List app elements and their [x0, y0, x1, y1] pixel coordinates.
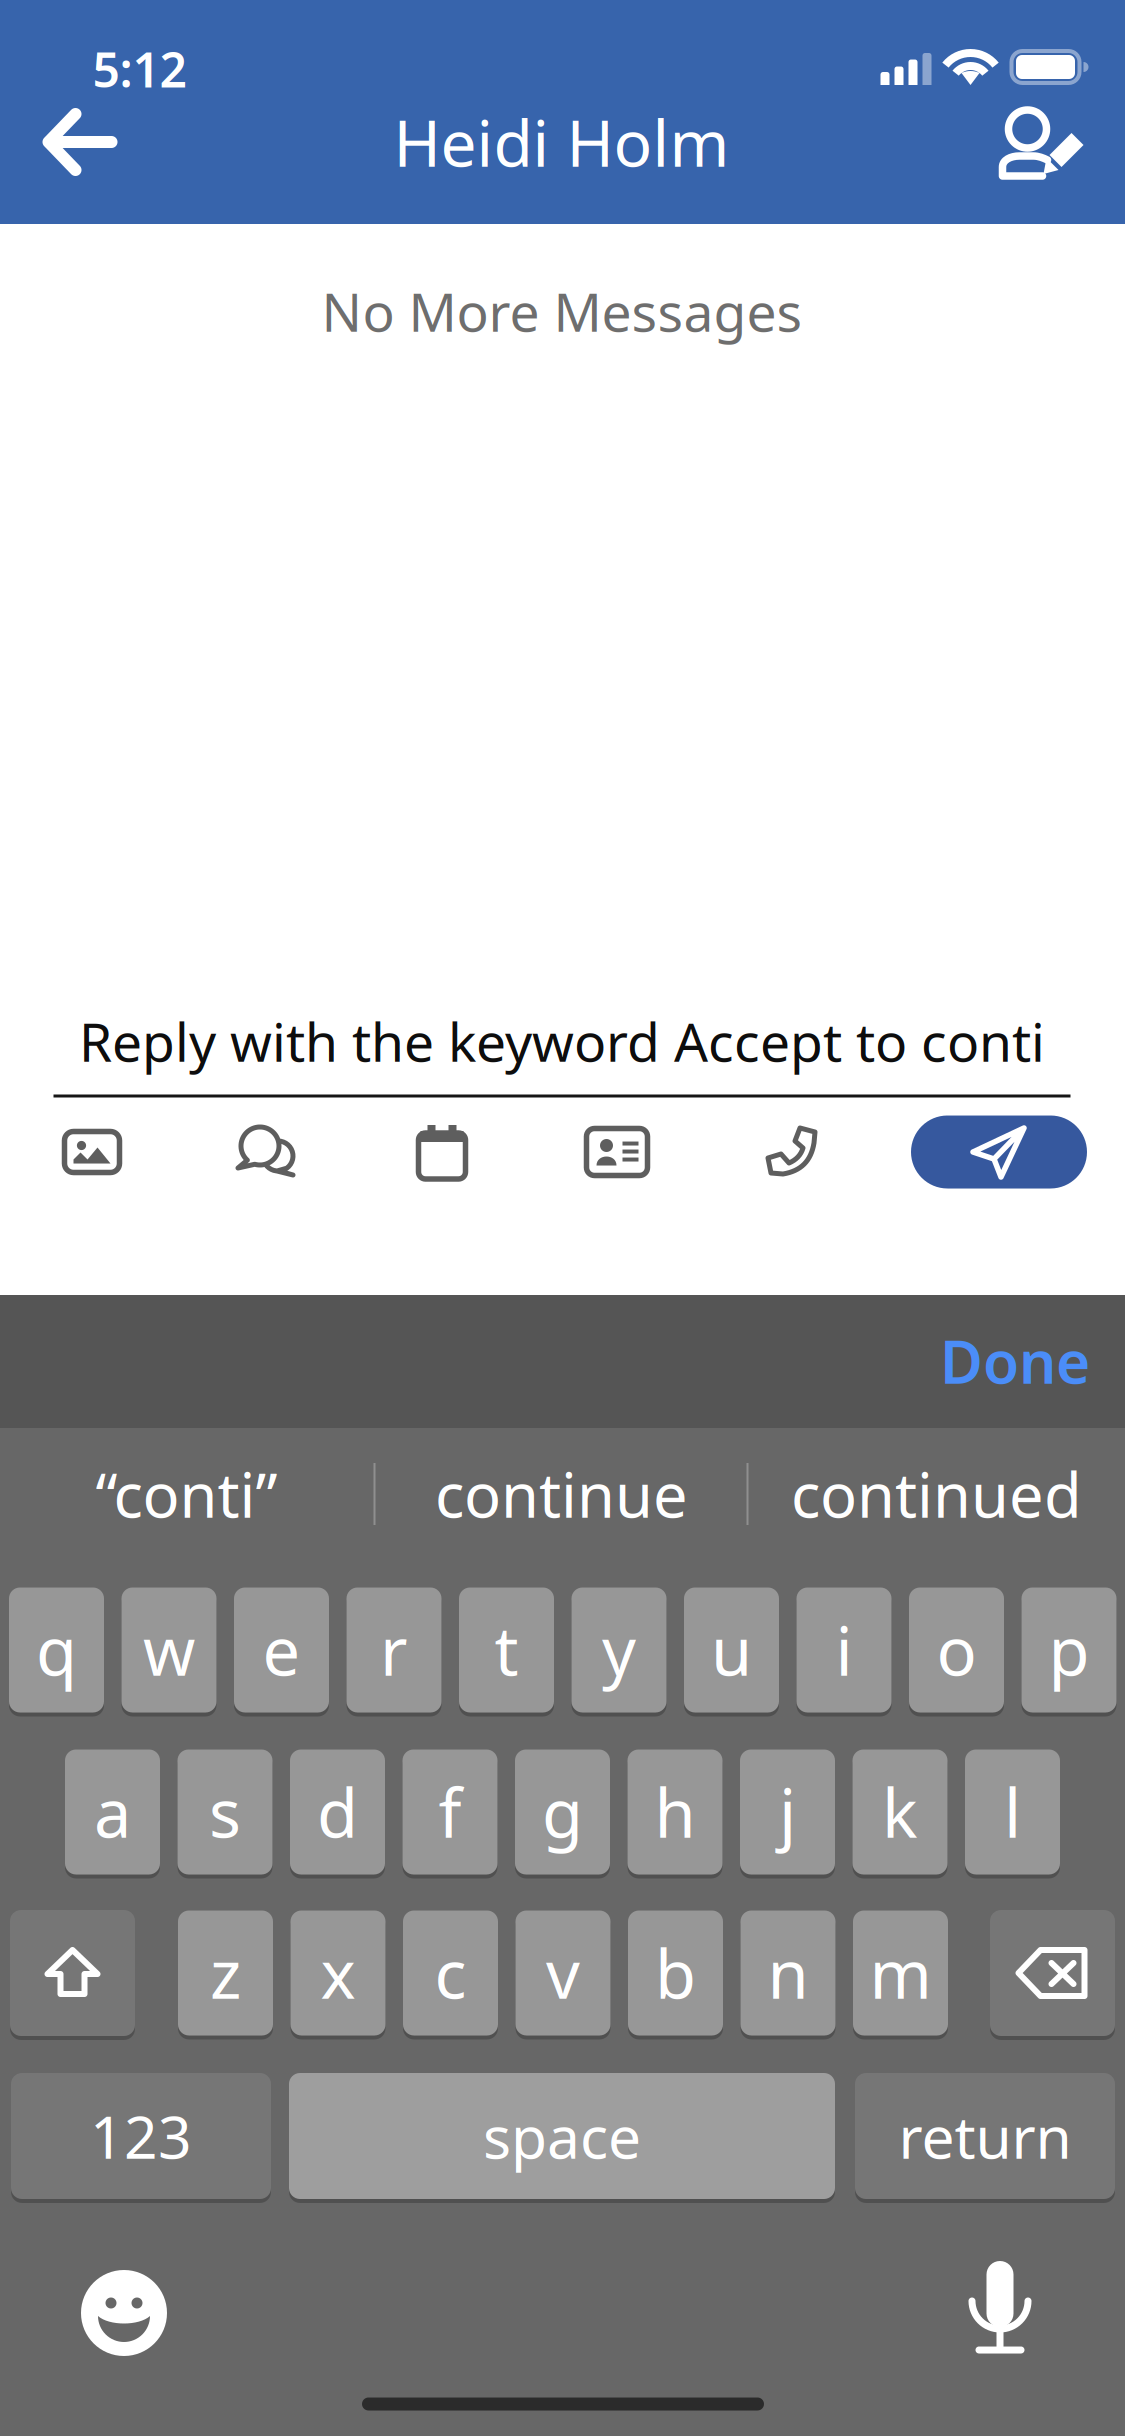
staticText: continued: [791, 1453, 1082, 1535]
button[interactable]: s: [177, 1747, 272, 1876]
button[interactable]: l: [965, 1747, 1060, 1876]
staticText: c: [434, 1929, 466, 2017]
staticText: z: [210, 1929, 241, 2017]
button[interactable]: Emoji: [64, 2253, 184, 2373]
staticText: s: [209, 1768, 241, 1856]
staticText: x: [320, 1929, 355, 2017]
button[interactable]: 123: [11, 2071, 271, 2201]
staticText: l: [1004, 1768, 1021, 1856]
staticText: j: [779, 1768, 796, 1856]
staticText: f: [438, 1768, 461, 1856]
button[interactable]: Call: [732, 1097, 852, 1207]
button[interactable]: a: [65, 1747, 160, 1876]
staticText: u: [711, 1606, 752, 1694]
staticText: q: [36, 1606, 77, 1694]
button[interactable]: r: [346, 1585, 441, 1714]
staticText: w: [143, 1606, 195, 1694]
staticText: e: [262, 1606, 300, 1694]
staticText: Heidi Holm: [393, 99, 729, 184]
staticText: g: [542, 1768, 583, 1856]
button[interactable]: q: [9, 1585, 104, 1714]
staticText: return: [898, 2097, 1071, 2175]
button[interactable]: Quick replies: [207, 1097, 327, 1207]
button[interactable]: k: [852, 1747, 947, 1876]
button[interactable]: n: [740, 1908, 835, 2037]
staticText: space: [483, 2097, 641, 2175]
button[interactable]: Calendar: [382, 1097, 502, 1207]
staticText: h: [654, 1768, 695, 1856]
button[interactable]: Send: [911, 1115, 1087, 1188]
staticText: i: [835, 1606, 852, 1694]
button[interactable]: m: [853, 1908, 948, 2037]
button[interactable]: continue: [376, 1428, 746, 1560]
button[interactable]: w: [121, 1585, 216, 1714]
button[interactable]: b: [628, 1908, 723, 2037]
button[interactable]: Delete: [990, 1908, 1115, 2038]
button[interactable]: f: [402, 1747, 497, 1876]
button[interactable]: Contact card: [557, 1097, 677, 1207]
button[interactable]: New message: [972, 88, 1112, 200]
button[interactable]: g: [515, 1747, 610, 1876]
staticText: “conti”: [95, 1453, 277, 1535]
staticText: t: [494, 1606, 518, 1694]
staticText: Done: [940, 1322, 1090, 1400]
button[interactable]: u: [684, 1585, 779, 1714]
button[interactable]: c: [403, 1908, 498, 2037]
button[interactable]: o: [909, 1585, 1004, 1714]
staticText: o: [936, 1606, 976, 1694]
staticText: r: [380, 1606, 408, 1694]
staticText: b: [655, 1929, 696, 2017]
button[interactable]: x: [290, 1908, 385, 2037]
button[interactable]: space: [289, 2071, 835, 2201]
staticText: Reply with the keyword Accept to conti: [79, 1006, 1045, 1076]
staticText: No More Messages: [321, 276, 802, 346]
staticText: p: [1048, 1606, 1089, 1694]
button[interactable]: j: [740, 1747, 835, 1876]
staticText: 123: [90, 2097, 192, 2175]
button[interactable]: Done: [925, 1311, 1105, 1411]
button[interactable]: v: [515, 1908, 610, 2037]
button[interactable]: h: [627, 1747, 722, 1876]
staticText: d: [317, 1768, 358, 1856]
button[interactable]: Back: [13, 81, 145, 203]
button[interactable]: Dictate: [940, 2252, 1060, 2372]
button[interactable]: e: [234, 1585, 329, 1714]
button[interactable]: Shift: [10, 1908, 135, 2038]
button[interactable]: z: [178, 1908, 273, 2037]
staticText: y: [602, 1606, 636, 1694]
staticText: k: [882, 1768, 918, 1856]
button[interactable]: y: [571, 1585, 666, 1714]
button[interactable]: Photo: [32, 1097, 152, 1207]
button[interactable]: “conti”: [1, 1428, 371, 1560]
button[interactable]: p: [1021, 1585, 1116, 1714]
staticText: 5:12: [92, 37, 186, 101]
staticText: n: [767, 1929, 808, 2017]
staticText: m: [869, 1929, 931, 2017]
button[interactable]: i: [796, 1585, 891, 1714]
button[interactable]: return: [855, 2071, 1115, 2201]
staticText: v: [546, 1929, 580, 2017]
staticText: a: [94, 1768, 131, 1856]
staticText: continue: [435, 1453, 688, 1535]
button[interactable]: t: [459, 1585, 554, 1714]
button[interactable]: d: [290, 1747, 385, 1876]
button[interactable]: continued: [751, 1428, 1121, 1560]
